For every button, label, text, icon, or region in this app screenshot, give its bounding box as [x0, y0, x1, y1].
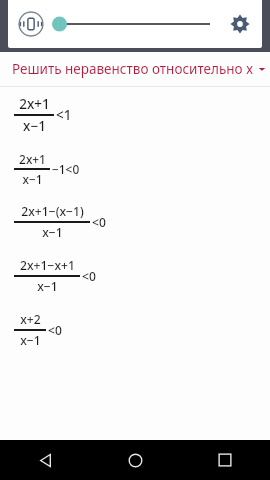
staticText: 2x+1−x+1	[20, 257, 75, 274]
button[interactable]: 2x+1	[14, 95, 270, 135]
button[interactable]: x+2	[14, 311, 270, 349]
staticText: <0	[92, 214, 106, 231]
staticText: x−1	[42, 224, 63, 241]
button[interactable]: 2x+1−(x−1)	[14, 203, 270, 241]
button[interactable]: Back	[0, 440, 90, 480]
staticText: 2x+1	[19, 151, 46, 167]
button[interactable]: Vibrate mode	[18, 11, 44, 37]
staticText: <1	[56, 106, 72, 124]
button[interactable]: Решить неравенство относительно x	[0, 52, 270, 86]
staticText: x−1	[20, 332, 41, 349]
staticText: Решить неравенство относительно x	[12, 60, 254, 78]
button[interactable]: Settings	[224, 8, 256, 40]
staticText: x−1	[23, 117, 46, 135]
staticText: <0	[82, 268, 96, 285]
staticText: x+2	[20, 311, 41, 328]
button[interactable]: 2x+1−x+1	[14, 257, 270, 295]
staticText: <0	[48, 322, 62, 339]
button[interactable]: Volume slider	[52, 9, 212, 39]
staticText: x−1	[37, 278, 58, 295]
staticText: x−1	[22, 171, 43, 187]
button[interactable]: Recent apps	[180, 440, 270, 480]
staticText: 2x+1−(x−1)	[21, 203, 84, 220]
button[interactable]: 2x+1	[14, 151, 270, 187]
staticText: 2x+1	[19, 95, 50, 113]
button[interactable]: Home	[90, 440, 180, 480]
staticText: −1<0	[52, 161, 80, 177]
